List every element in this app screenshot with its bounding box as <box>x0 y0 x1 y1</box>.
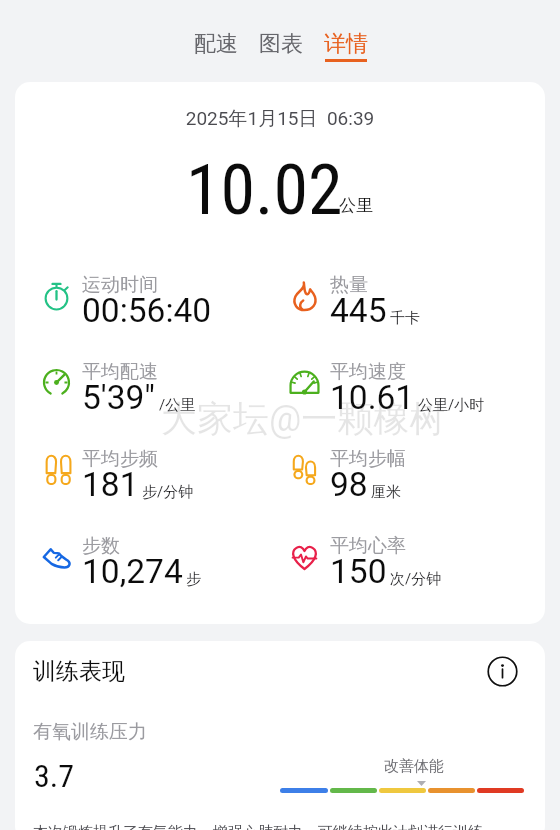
staticText: 热量 <box>330 273 368 297</box>
staticText: 150 <box>330 552 387 591</box>
staticText: 大家坛@一颗橡树 <box>161 396 446 441</box>
staticText: 千卡 <box>390 309 420 328</box>
staticText: 公里/小时 <box>418 396 485 415</box>
button[interactable]: 图表 <box>259 30 303 62</box>
staticText: 运动时间 <box>82 273 158 297</box>
button[interactable]: 详情 <box>324 30 368 62</box>
staticText: 训练表现 <box>33 657 125 686</box>
staticText: 10.61 <box>330 378 415 417</box>
button[interactable]: 配速 <box>194 30 238 62</box>
staticText: 平均步幅 <box>330 447 406 471</box>
staticText: 公里 <box>339 195 373 216</box>
staticText: 本次锻炼提升了有氧能力，增强心肺耐力，可继续按此计划进行训练。 <box>33 823 498 830</box>
staticText: 图表 <box>259 30 303 58</box>
staticText: 次/分钟 <box>390 570 442 589</box>
staticText: 有氧训练压力 <box>33 720 147 744</box>
staticText: 改善体能 <box>384 757 444 776</box>
staticText: 详情 <box>324 30 368 58</box>
staticText: 平均速度 <box>330 360 406 384</box>
staticText: 平均心率 <box>330 534 406 558</box>
staticText: 配速 <box>194 30 238 58</box>
staticText: 3.7 <box>34 757 75 795</box>
staticText: 5'39" <box>82 378 156 417</box>
staticText: 步数 <box>82 534 120 558</box>
staticText: 步 <box>186 570 201 589</box>
staticText: 10,274 <box>82 552 183 591</box>
staticText: 平均步频 <box>82 447 158 471</box>
button[interactable]: 说明 <box>486 655 518 687</box>
staticText: /公里 <box>159 396 196 415</box>
staticText: 厘米 <box>371 483 401 502</box>
staticText: 98 <box>330 465 368 504</box>
staticText: 181 <box>82 465 139 504</box>
staticText: 10.02 <box>186 149 343 231</box>
staticText: 2025年1月15日 06:39 <box>15 107 545 131</box>
staticText: 步/分钟 <box>142 483 194 502</box>
staticText: 平均配速 <box>82 360 158 384</box>
staticText: 00:56:40 <box>82 291 212 330</box>
staticText: 445 <box>330 291 387 330</box>
